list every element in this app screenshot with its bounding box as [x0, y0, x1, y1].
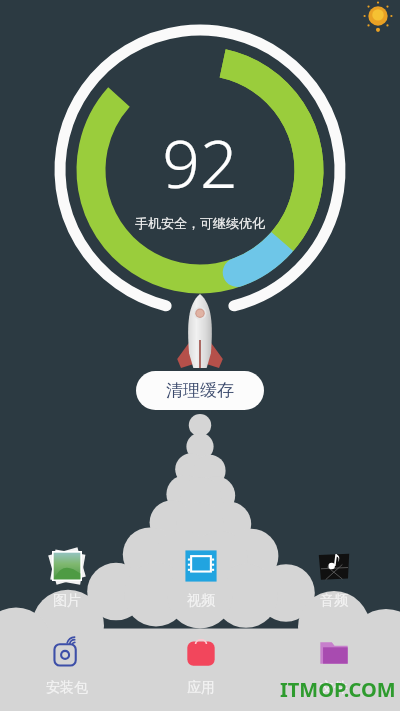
button[interactable]: 安装包 [0, 634, 134, 697]
button[interactable]: 文件 [267, 634, 400, 697]
staticText: 应用 [187, 679, 215, 697]
button[interactable]: 图片 [0, 547, 134, 610]
button[interactable]: 视频 [134, 547, 267, 610]
button[interactable]: Rewards [364, 2, 392, 30]
staticText: 音频 [320, 592, 348, 610]
button[interactable]: 应用 [134, 634, 267, 697]
staticText: 安装包 [46, 679, 88, 697]
staticText: 视频 [187, 592, 215, 610]
button[interactable]: 清理缓存 [136, 371, 264, 410]
staticText: 图片 [53, 592, 81, 610]
staticText: 手机安全，可继续优化 [135, 215, 265, 231]
staticText: 清理缓存 [166, 380, 234, 401]
staticText: ITMOP.COM [280, 676, 396, 703]
staticText: 92 [162, 117, 238, 207]
staticText: 文件 [320, 679, 348, 697]
button[interactable]: 音频 [267, 547, 400, 610]
